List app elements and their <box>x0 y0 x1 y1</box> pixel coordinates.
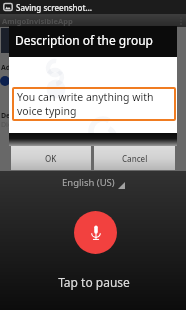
staticText: Dig <box>1 120 13 130</box>
button[interactable]: You can write anything with voice typing <box>12 87 176 121</box>
button[interactable]: English (US) <box>56 173 131 192</box>
staticText: OK <box>45 153 57 164</box>
staticText: Cancel <box>122 153 148 164</box>
staticText: You can write anything with voice typing <box>17 90 171 118</box>
staticText: AmigoInvisibleApp <box>2 16 73 26</box>
button[interactable]: Cancel <box>94 146 175 170</box>
button[interactable]: OK <box>11 146 91 170</box>
staticText: Description of the group <box>15 32 153 48</box>
button[interactable]: Microphone, tap to pause <box>74 211 117 254</box>
staticText: Des <box>1 111 14 121</box>
staticText: Add <box>1 63 15 73</box>
staticText: English (US) <box>62 176 115 189</box>
staticText: Tap to pause <box>1 274 186 290</box>
staticText: Saving screenshot… <box>16 2 92 13</box>
